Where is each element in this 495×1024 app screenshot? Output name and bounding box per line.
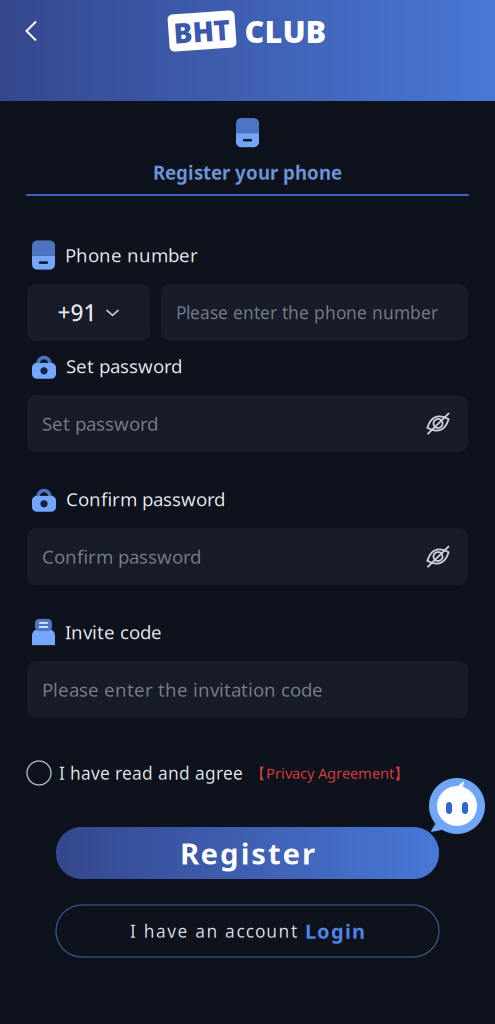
- button[interactable]: Show password: [418, 528, 458, 585]
- button[interactable]: I have an account: [56, 905, 439, 957]
- staticText: Set password: [42, 411, 158, 436]
- staticText: CLUB: [244, 11, 326, 51]
- button[interactable]: Back: [8, 8, 54, 54]
- staticText: Invite code: [65, 620, 162, 644]
- staticText: Confirm password: [42, 544, 201, 569]
- button[interactable]: Register: [56, 827, 439, 879]
- button[interactable]: +91: [27, 284, 150, 341]
- staticText: Confirm password: [66, 487, 225, 511]
- button[interactable]: I have read and agree: [27, 761, 468, 785]
- staticText: Set password: [66, 354, 182, 378]
- staticText: Login: [305, 918, 365, 944]
- staticText: Register: [180, 833, 315, 872]
- staticText: 【Privacy Agreement】: [251, 763, 409, 783]
- staticText: Please enter the phone number: [176, 301, 438, 324]
- staticText: Phone number: [65, 243, 198, 267]
- staticText: Please enter the invitation code: [42, 677, 323, 702]
- staticText: Register your phone: [153, 160, 342, 185]
- staticText: I have an account: [130, 919, 297, 942]
- button[interactable]: Show password: [418, 395, 458, 452]
- staticText: I have read and agree: [59, 761, 243, 784]
- staticText: +91: [57, 297, 96, 327]
- button[interactable]: Customer service: [428, 777, 486, 835]
- staticText: BHT: [173, 12, 230, 50]
